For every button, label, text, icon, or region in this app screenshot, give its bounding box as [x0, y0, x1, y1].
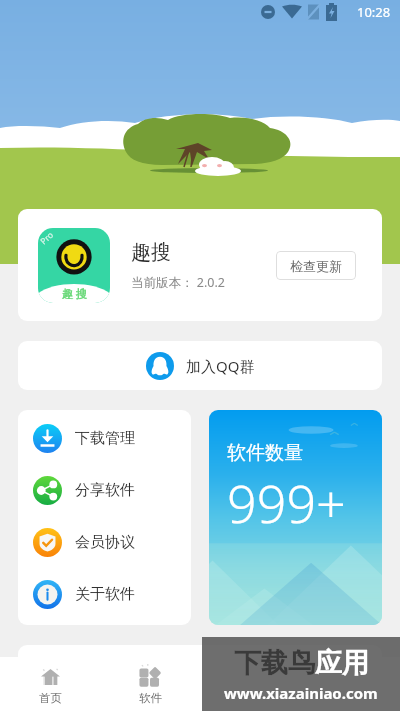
button[interactable]: 加入QQ群 — [18, 341, 382, 390]
staticText: 趣搜 — [131, 240, 171, 265]
button[interactable]: 会员协议 — [18, 516, 191, 568]
staticText: www.xiazainiao.com — [224, 683, 378, 703]
staticText: 关于软件 — [75, 585, 135, 604]
staticText: 应用 — [315, 646, 369, 680]
staticText: 会员协议 — [75, 533, 135, 552]
staticText: 当前版本： 2.0.2 — [131, 274, 225, 291]
button[interactable]: 关于软件 — [18, 568, 191, 620]
staticText: Pro — [38, 229, 56, 247]
staticText: 下载鸟 — [234, 646, 315, 680]
staticText: 10:28 — [357, 3, 391, 21]
staticText: 趣 搜 — [62, 286, 87, 301]
staticText: 检查更新 — [290, 258, 342, 274]
staticText: 分享软件 — [75, 481, 135, 500]
staticText: 下载管理 — [75, 429, 135, 448]
button[interactable]: 软件 — [100, 657, 200, 711]
staticText: 软件 — [139, 691, 162, 705]
staticText: 加入QQ群 — [186, 356, 255, 376]
staticText: 首页 — [39, 691, 62, 705]
staticText: 999+ — [227, 467, 346, 538]
button[interactable]: 首页 — [0, 657, 100, 711]
button[interactable]: 分享软件 — [18, 464, 191, 516]
button[interactable]: 检查更新 — [276, 251, 356, 280]
staticText: 软件数量 — [227, 441, 303, 465]
button[interactable]: 下载管理 — [18, 412, 191, 464]
